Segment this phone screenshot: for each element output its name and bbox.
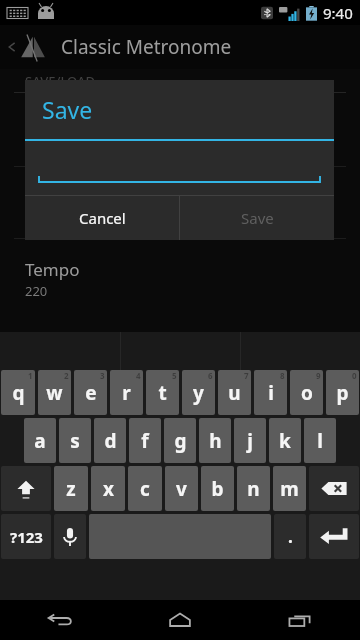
staticText: a <box>34 428 46 454</box>
staticText: Save <box>42 94 93 125</box>
button[interactable]: d <box>94 418 126 463</box>
staticText: 5 <box>172 370 177 381</box>
staticText: 7 <box>244 370 249 381</box>
button[interactable]: b <box>201 466 234 511</box>
staticText: 220 <box>25 282 48 300</box>
staticText: f <box>141 428 149 454</box>
button[interactable]: k <box>269 418 301 463</box>
button[interactable]: . <box>274 514 306 559</box>
button[interactable]: c <box>128 466 162 511</box>
staticText: e <box>85 380 97 406</box>
button[interactable]: ?123 <box>1 514 51 559</box>
staticText: 9 <box>316 370 321 381</box>
staticText: n <box>247 476 260 502</box>
button[interactable]: h <box>199 418 231 463</box>
button[interactable]: Delete <box>309 466 359 511</box>
staticText: i <box>268 380 274 406</box>
staticText: b <box>211 476 224 502</box>
staticText: d <box>104 428 117 454</box>
button[interactable]: Shift <box>1 466 51 511</box>
button[interactable]: e <box>74 370 107 415</box>
staticText: j <box>247 428 253 454</box>
staticText: 0 <box>352 370 357 381</box>
button[interactable]: Back <box>0 600 120 640</box>
staticText: 1 <box>28 370 33 381</box>
button[interactable]: u <box>218 370 251 415</box>
staticText: s <box>70 428 80 454</box>
staticText: w <box>46 380 63 406</box>
staticText: Save <box>241 208 274 228</box>
button[interactable]: x <box>91 466 125 511</box>
button[interactable]: z <box>54 466 88 511</box>
staticText: 2 <box>64 370 69 381</box>
staticText: ?123 <box>10 527 43 547</box>
staticText: h <box>209 428 222 454</box>
staticText: 9:40 <box>323 3 353 23</box>
button[interactable]: f <box>129 418 161 463</box>
staticText: p <box>336 380 349 406</box>
button[interactable]: t <box>146 370 179 415</box>
button[interactable]: Enter <box>309 514 359 559</box>
button[interactable]: n <box>237 466 270 511</box>
button[interactable]: Recent apps <box>240 600 360 640</box>
button[interactable]: y <box>182 370 215 415</box>
staticText: z <box>66 476 76 502</box>
staticText: v <box>176 476 187 502</box>
button[interactable]: Navigate up <box>0 25 54 69</box>
staticText: . <box>288 525 293 548</box>
button[interactable]: w <box>38 370 71 415</box>
staticText: Cancel <box>79 208 126 228</box>
staticText: 3 <box>100 370 105 381</box>
staticText: c <box>140 476 150 502</box>
button[interactable]: Home <box>120 600 240 640</box>
staticText: o <box>301 380 313 406</box>
staticText: u <box>228 380 241 406</box>
button[interactable]: m <box>273 466 306 511</box>
staticText: q <box>12 380 25 406</box>
staticText: g <box>174 428 187 454</box>
button[interactable]: o <box>290 370 323 415</box>
staticText: x <box>103 476 114 502</box>
button[interactable]: p <box>326 370 359 415</box>
staticText: y <box>193 380 204 406</box>
button[interactable]: Cancel <box>25 196 179 240</box>
button[interactable]: a <box>24 418 56 463</box>
button[interactable]: q <box>1 370 35 415</box>
staticText: Tempo <box>25 258 80 281</box>
staticText: m <box>280 476 299 502</box>
staticText: 4 <box>136 370 141 381</box>
button[interactable]: Voice input <box>54 514 86 559</box>
staticText: t <box>158 380 167 406</box>
staticText: 6 <box>208 370 213 381</box>
button[interactable]: i <box>254 370 287 415</box>
button[interactable]: Save <box>180 196 334 240</box>
staticText: r <box>122 380 131 406</box>
staticText: SAVE/LOAD <box>25 72 96 90</box>
button[interactable]: v <box>165 466 198 511</box>
button[interactable]: r <box>110 370 143 415</box>
button[interactable]: s <box>59 418 91 463</box>
staticText: 8 <box>280 370 285 381</box>
button[interactable]: g <box>164 418 196 463</box>
button[interactable]: j <box>234 418 266 463</box>
staticText: l <box>317 428 323 454</box>
staticText: k <box>279 428 291 454</box>
staticText: Classic Metronome <box>61 34 232 60</box>
button[interactable]: l <box>304 418 336 463</box>
